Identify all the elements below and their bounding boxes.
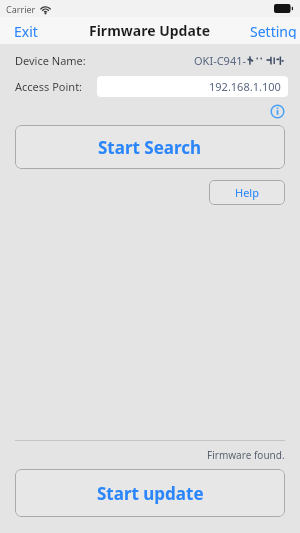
staticText: Firmware Update — [89, 21, 211, 40]
button[interactable]: Exit — [0, 17, 52, 44]
staticText: Carrier — [6, 3, 36, 15]
button[interactable]: Start update — [15, 469, 285, 517]
staticText: Device Name: — [15, 53, 86, 68]
button[interactable]: Setting — [238, 17, 300, 44]
staticText: Start update — [97, 482, 204, 505]
button[interactable]: Help — [209, 180, 285, 205]
button[interactable]: 192.168.1.100 — [97, 76, 288, 97]
staticText: Exit — [14, 22, 38, 39]
staticText: 192.168.1.100 — [209, 79, 281, 94]
button[interactable]: Information — [268, 102, 286, 120]
staticText: Setting — [250, 22, 297, 39]
staticText: Access Point: — [15, 79, 83, 94]
staticText: OKI-C941- — [194, 53, 247, 68]
staticText: Firmware found. — [207, 448, 285, 462]
staticText: Help — [235, 185, 259, 200]
staticText: Start Search — [98, 136, 202, 159]
button[interactable]: Start Search — [15, 125, 285, 169]
